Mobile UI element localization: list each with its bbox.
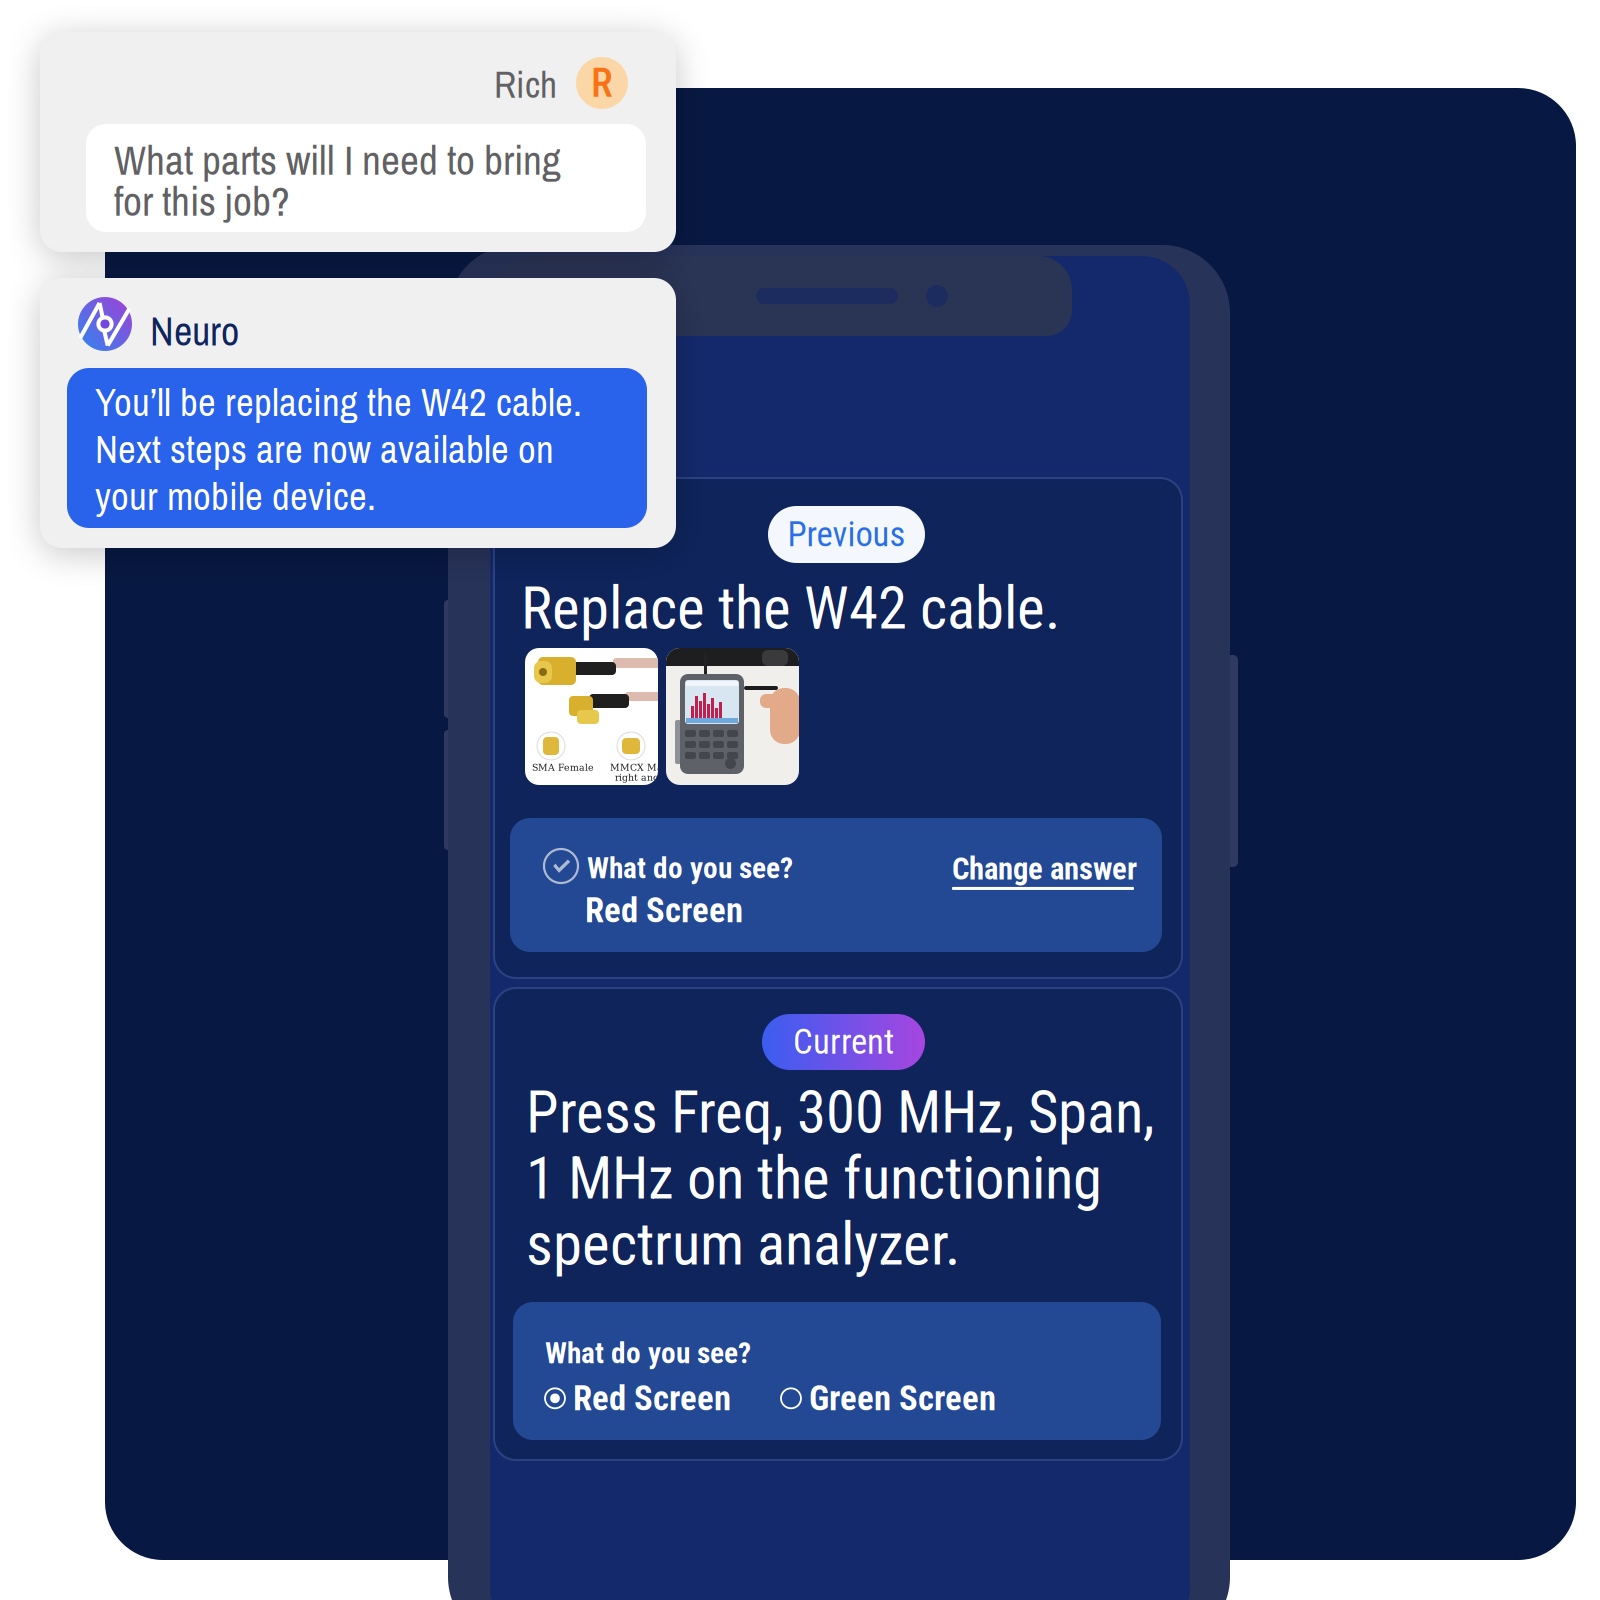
staticText: Next steps are now available on xyxy=(95,423,554,475)
staticText: Change answer xyxy=(952,851,1137,887)
button[interactable]: Change answer xyxy=(952,851,1137,890)
staticText: SMA Female xyxy=(532,762,594,773)
staticText: Current xyxy=(793,1022,894,1062)
staticText: Red Screen xyxy=(585,890,743,931)
staticText: Replace the W42 cable. xyxy=(521,574,1060,643)
staticText: spectrum analyzer. xyxy=(526,1210,960,1279)
staticText: Green Screen xyxy=(809,1378,996,1419)
button[interactable]: Current xyxy=(762,1014,925,1070)
button[interactable]: Green Screen xyxy=(781,1378,996,1419)
staticText: Press Freq, 300 MHz, Span, xyxy=(526,1078,1155,1147)
staticText: your mobile device. xyxy=(95,470,376,522)
staticText: What do you see? xyxy=(545,1336,751,1370)
staticText: Rich xyxy=(494,59,557,109)
staticText: You’ll be replacing the W42 cable. xyxy=(95,376,582,428)
staticText: Previous xyxy=(787,514,905,555)
staticText: right angle xyxy=(615,772,668,783)
staticText: What do you see? xyxy=(587,851,793,885)
staticText: What parts will I need to bring xyxy=(114,132,561,188)
staticText: Red Screen xyxy=(573,1378,731,1419)
staticText: Neuro xyxy=(150,304,239,358)
staticText: R xyxy=(591,60,613,106)
staticText: for this job? xyxy=(114,173,290,229)
button[interactable]: Previous xyxy=(768,506,925,563)
button[interactable]: Red Screen xyxy=(545,1378,731,1419)
staticText: MMCX Male xyxy=(610,762,672,773)
staticText: 1 MHz on the functioning xyxy=(526,1144,1102,1213)
